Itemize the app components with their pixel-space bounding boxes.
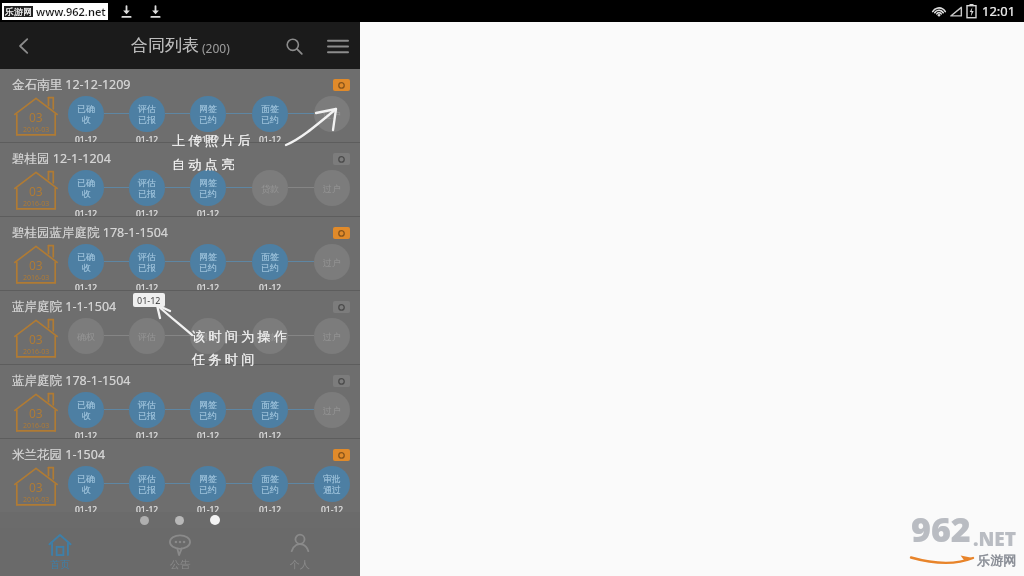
staticText: 已确 [77,103,95,114]
button[interactable]: 碧桂园蓝岸庭院 178-1-1504 [0,217,360,290]
button[interactable]: Upload photo [333,375,350,387]
staticText: 01-12 [259,430,282,438]
button[interactable]: 确权 [68,318,104,354]
staticText: 审批 [323,473,341,484]
button[interactable]: 已确 [68,466,104,502]
button[interactable]: Back [0,22,48,69]
staticText: 2016-03 [23,347,50,357]
staticText: 首页 [50,558,70,571]
button[interactable]: 金石南里 12-12-1209 [0,69,360,142]
staticText: 碧桂园蓝岸庭院 178-1-1504 [12,224,169,241]
staticText: 01-12 [75,504,98,512]
staticText: 2016-03 [23,199,50,209]
button[interactable]: Upload photo [333,227,350,239]
button[interactable]: 网签 [190,170,226,206]
button[interactable]: Upload photo [333,153,350,165]
button[interactable]: 碧桂园 12-1-1204 [0,143,360,216]
staticText: 确权 [77,331,95,342]
staticText: 03 [29,405,43,421]
button[interactable]: 面签 [252,392,288,428]
button[interactable]: 评估 [129,392,165,428]
staticText: 贷款 [261,183,279,194]
staticText: 过户 [323,257,341,268]
staticText: 03 [29,109,43,125]
button[interactable]: 过户 [314,96,350,132]
button[interactable]: 网签 [190,244,226,280]
staticText: 01-12 [136,430,159,438]
button[interactable]: Upload photo [333,79,350,91]
staticText: 01-12 [136,208,159,216]
staticText: 01-12 [197,430,220,438]
staticText: 该 时 间 为 操 作 [192,327,287,345]
button[interactable]: Upload photo [333,449,350,461]
staticText: 2016-03 [23,421,50,431]
button[interactable]: 已确 [68,96,104,132]
staticText: 收 [82,114,91,125]
staticText: 01-12 [259,504,282,512]
button[interactable]: 已确 [68,392,104,428]
staticText: 已确 [77,177,95,188]
button[interactable]: Search [272,24,316,68]
staticText: 面签 [261,473,279,484]
button[interactable]: 面签 [252,466,288,502]
staticText: 01-12 [75,134,98,142]
staticText: 01-12 [136,282,159,290]
staticText: 面签 [261,251,279,262]
staticText: 2016-03 [23,125,50,135]
button[interactable]: 网签 [190,96,226,132]
staticText: 收 [82,262,91,273]
button[interactable]: 评估 [129,318,165,354]
button[interactable]: 蓝岸庭院 178-1-1504 [0,365,360,438]
button[interactable]: 评估 [129,96,165,132]
staticText: 01-12 [197,504,220,512]
staticText: 12:01 [982,2,1016,20]
staticText: 过户 [323,183,341,194]
button[interactable]: 过户 [314,244,350,280]
button[interactable]: 个人 [240,528,360,576]
staticText: 01-12 [136,134,159,142]
button[interactable]: 已确 [68,244,104,280]
staticText: 01-12 [197,282,220,290]
button[interactable]: 评估 [129,170,165,206]
button[interactable]: 公告 [120,528,240,576]
button[interactable]: 贷款 [252,318,288,354]
button[interactable]: 贷款 [252,170,288,206]
staticText: 评估 [138,103,156,114]
staticText: 01-12 [259,282,282,290]
staticText: 收 [82,410,91,421]
button[interactable]: 过户 [314,318,350,354]
staticText: 通过 [323,484,341,495]
button[interactable]: 面签 [252,244,288,280]
button[interactable]: 网签 [190,466,226,502]
staticText: 任 务 时 间 [192,350,255,368]
button[interactable]: 面签 [252,96,288,132]
staticText: 贷款 [261,331,279,342]
button[interactable]: 审批 [314,466,350,502]
staticText: 已确 [77,251,95,262]
staticText: 962 [911,506,971,552]
button[interactable]: 网签 [190,318,226,354]
button[interactable]: 米兰花园 1-1504 [0,439,360,512]
button[interactable]: Upload photo [333,301,350,313]
staticText: 已报 [138,114,156,125]
button[interactable]: 过户 [314,392,350,428]
staticText: 网签 [199,177,217,188]
staticText: 2016-03 [23,495,50,505]
staticText: www.962.net [36,4,106,19]
button[interactable]: 网签 [190,392,226,428]
button[interactable]: 评估 [129,244,165,280]
staticText: 评估 [138,177,156,188]
button[interactable]: 首页 [0,528,120,576]
staticText: 已约 [261,410,279,421]
staticText: 乐游网 [5,6,32,17]
staticText: 已约 [261,262,279,273]
button[interactable]: 已确 [68,170,104,206]
staticText: 面签 [261,399,279,410]
staticText: 已确 [77,473,95,484]
button[interactable]: 蓝岸庭院 1-1-1504 [0,291,360,364]
button[interactable]: 评估 [129,466,165,502]
button[interactable]: 过户 [314,170,350,206]
button[interactable]: Menu [316,24,360,68]
staticText: 米兰花园 1-1504 [12,446,106,463]
staticText: 01-12 [259,134,282,142]
